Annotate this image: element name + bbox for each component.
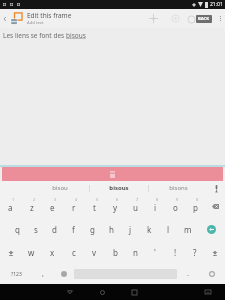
button[interactable]: m — [178, 218, 197, 241]
button[interactable]: Resize keyboard — [2, 167, 223, 181]
staticText: 3 — [54, 197, 57, 202]
staticText: 6 — [116, 197, 119, 202]
button[interactable]: Shift — [0, 241, 21, 264]
staticText: bisons — [169, 184, 188, 192]
button[interactable]: Delete — [205, 195, 225, 218]
button[interactable]: BACK — [186, 13, 213, 25]
staticText: y — [113, 202, 118, 213]
button[interactable]: Back — [53, 284, 86, 300]
staticText: a — [8, 202, 13, 213]
button[interactable]: n — [125, 241, 145, 264]
button[interactable]: 9 — [165, 195, 185, 218]
staticText: Add text — [27, 20, 44, 26]
staticText: Edit this frame — [27, 11, 72, 20]
button[interactable]: ! — [165, 241, 185, 264]
staticText: c — [72, 247, 76, 258]
button[interactable]: Home — [86, 284, 118, 300]
staticText: , — [42, 269, 44, 279]
staticText: z — [30, 202, 34, 213]
button[interactable]: c — [63, 241, 84, 264]
staticText: m — [184, 224, 192, 235]
staticText: 9 — [176, 197, 179, 202]
button[interactable]: g — [83, 218, 102, 241]
staticText: 21:01 — [210, 1, 223, 8]
button[interactable]: v — [84, 241, 105, 264]
button[interactable]: d — [45, 218, 64, 241]
staticText: n — [133, 247, 138, 258]
button[interactable]: ?123 — [0, 264, 32, 284]
button[interactable]: More options — [215, 9, 225, 28]
button[interactable]: Enter — [197, 218, 225, 241]
button[interactable]: Voice input — [207, 181, 225, 195]
staticText: x — [50, 247, 55, 258]
staticText: i — [154, 202, 157, 213]
button[interactable]: f — [64, 218, 83, 241]
staticText: g — [90, 224, 95, 235]
button[interactable]: 0 — [185, 195, 205, 218]
button[interactable]: x — [42, 241, 63, 264]
staticText: s — [34, 224, 38, 235]
button[interactable]: l — [159, 218, 178, 241]
button[interactable]: Shift — [205, 241, 225, 264]
button[interactable]: 2 — [21, 195, 42, 218]
button[interactable]: k — [140, 218, 159, 241]
button[interactable]: Emoji — [53, 264, 74, 284]
button[interactable]: Language — [198, 264, 225, 284]
staticText: u — [133, 202, 138, 213]
button[interactable]: . — [177, 264, 198, 284]
button[interactable]: Navigate up — [0, 9, 9, 28]
button[interactable]: 4 — [63, 195, 84, 218]
staticText: b — [113, 247, 118, 258]
staticText: 7 — [136, 197, 139, 202]
button[interactable]: b — [105, 241, 125, 264]
button[interactable]: 7 — [125, 195, 145, 218]
staticText: e — [50, 202, 55, 213]
staticText: d — [52, 224, 57, 235]
button[interactable]: bisous — [90, 181, 148, 195]
staticText: ' — [154, 247, 156, 258]
staticText: l — [167, 224, 170, 235]
button[interactable]: ' — [145, 241, 165, 264]
staticText: r — [72, 202, 76, 213]
staticText: bisous — [66, 31, 86, 40]
staticText: w — [28, 247, 35, 258]
staticText: q — [15, 224, 20, 235]
staticText: 1 — [12, 197, 15, 202]
button[interactable]: w — [21, 241, 42, 264]
button[interactable]: h — [102, 218, 121, 241]
staticText: 4 — [75, 197, 78, 202]
button[interactable]: 3 — [42, 195, 63, 218]
staticText: 8 — [156, 197, 159, 202]
button[interactable]: j — [121, 218, 140, 241]
staticText: Les liens se font des — [3, 31, 66, 40]
staticText: v — [92, 247, 97, 258]
button[interactable]: Rotate — [164, 9, 186, 28]
button[interactable]: , — [32, 264, 53, 284]
staticText: p — [193, 202, 198, 213]
staticText: BACK — [198, 16, 210, 22]
button[interactable]: 6 — [105, 195, 125, 218]
staticText: . — [187, 269, 189, 279]
button[interactable]: ? — [185, 241, 205, 264]
button[interactable]: bisou — [30, 181, 89, 195]
button[interactable]: Recent apps — [118, 284, 150, 300]
staticText: ? — [193, 247, 197, 258]
button[interactable]: s — [26, 218, 45, 241]
button[interactable]: Move — [142, 9, 164, 28]
button[interactable]: Change keyboard — [192, 284, 224, 300]
staticText: t — [93, 202, 96, 213]
button[interactable]: 5 — [84, 195, 105, 218]
staticText: 2 — [33, 197, 36, 202]
staticText: ?123 — [11, 271, 22, 278]
button[interactable]: bisons — [149, 181, 207, 195]
staticText: o — [173, 202, 178, 213]
button[interactable]: 8 — [145, 195, 165, 218]
staticText: f — [72, 224, 75, 235]
staticText: 0 — [196, 197, 199, 202]
staticText: bisous — [109, 184, 129, 192]
button[interactable]: 1 — [0, 195, 21, 218]
button[interactable]: q — [8, 218, 26, 241]
staticText: 5 — [96, 197, 99, 202]
staticText: bisou — [52, 184, 68, 192]
